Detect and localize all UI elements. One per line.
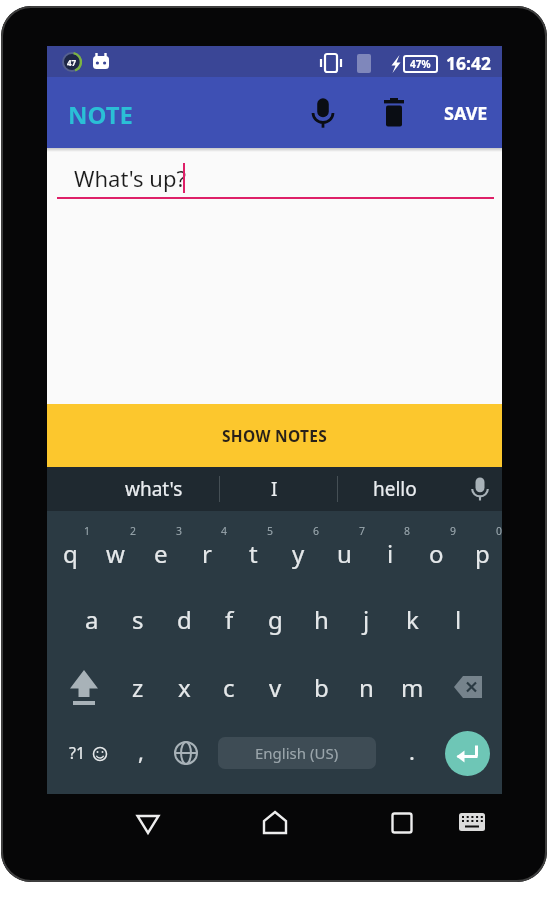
button[interactable]: y [276, 527, 320, 579]
staticText: u [337, 537, 352, 570]
button[interactable]: i [368, 527, 412, 579]
staticText: w [106, 537, 125, 570]
staticText: 5 [267, 524, 274, 538]
button[interactable]: c [207, 659, 251, 715]
button[interactable]: what's [99, 467, 209, 511]
staticText: 47 [67, 57, 77, 68]
staticText: z [132, 671, 144, 704]
button[interactable]: v [253, 659, 297, 715]
staticText: ?1 [69, 742, 86, 764]
button[interactable] [389, 810, 415, 836]
staticText: English (US) [255, 743, 339, 763]
button[interactable]: e [139, 527, 183, 579]
staticText: l [455, 603, 462, 636]
staticText: 7 [359, 524, 366, 538]
button[interactable]: j [344, 591, 388, 647]
staticText: i [387, 537, 394, 570]
staticText: y [292, 537, 305, 570]
button[interactable]: hello [345, 467, 445, 511]
button[interactable] [445, 731, 490, 776]
button[interactable]: p [460, 527, 504, 579]
staticText: 47% [410, 57, 431, 71]
button[interactable] [59, 661, 109, 713]
button[interactable] [457, 810, 487, 834]
staticText: p [475, 537, 490, 570]
staticText: 16:42 [446, 51, 491, 75]
staticText: k [406, 603, 419, 636]
staticText: q [63, 537, 78, 570]
button[interactable]: o [414, 527, 458, 579]
button[interactable] [443, 661, 493, 713]
button[interactable]: x [162, 659, 206, 715]
button[interactable]: ?1 [56, 727, 98, 779]
staticText: NOTE [68, 98, 134, 131]
button[interactable]: SHOW NOTES [47, 404, 502, 467]
button[interactable]: . [394, 725, 430, 777]
button[interactable]: l [436, 591, 480, 647]
staticText: 9 [450, 524, 457, 538]
button[interactable]: SAVE [430, 92, 502, 134]
button[interactable] [300, 89, 346, 137]
staticText: h [314, 603, 329, 636]
button[interactable]: q [48, 527, 92, 579]
button[interactable]: , [123, 725, 159, 777]
staticText: 0 [496, 524, 503, 538]
button[interactable]: f [207, 591, 251, 647]
button[interactable] [260, 809, 290, 837]
staticText: 2 [130, 524, 137, 538]
staticText: 4 [221, 524, 228, 538]
button[interactable] [57, 152, 494, 200]
button[interactable]: t [231, 527, 275, 579]
staticText: a [85, 603, 99, 636]
staticText: t [249, 537, 258, 570]
button[interactable]: h [299, 591, 343, 647]
button[interactable]: English (US) [218, 737, 376, 769]
button[interactable]: d [162, 591, 206, 647]
staticText: . [409, 736, 415, 766]
staticText: e [154, 537, 168, 570]
staticText: c [223, 671, 235, 704]
staticText: b [314, 671, 329, 704]
button[interactable] [371, 89, 417, 137]
staticText: j [363, 603, 370, 636]
button[interactable] [166, 733, 206, 773]
staticText: v [269, 671, 282, 704]
button[interactable] [133, 811, 163, 837]
staticText: what's [125, 476, 183, 502]
button[interactable] [465, 474, 495, 504]
staticText: o [429, 537, 444, 570]
staticText: SHOW NOTES [222, 425, 328, 446]
staticText: m [401, 671, 424, 704]
staticText: x [178, 671, 191, 704]
button[interactable]: k [390, 591, 434, 647]
button[interactable]: g [253, 591, 297, 647]
button[interactable]: a [70, 591, 114, 647]
button[interactable]: r [185, 527, 229, 579]
staticText: n [359, 671, 374, 704]
staticText: 1 [84, 524, 91, 538]
staticText: , [138, 736, 144, 766]
button[interactable]: n [344, 659, 388, 715]
staticText: 3 [176, 524, 183, 538]
button[interactable]: s [116, 591, 160, 647]
staticText: s [132, 603, 144, 636]
staticText: hello [373, 476, 417, 502]
button[interactable]: w [93, 527, 137, 579]
button[interactable]: m [390, 659, 434, 715]
button[interactable]: z [116, 659, 160, 715]
staticText: d [177, 603, 192, 636]
staticText: What's up? [74, 163, 187, 193]
button[interactable]: I [224, 467, 324, 511]
button[interactable]: b [299, 659, 343, 715]
staticText: 8 [404, 524, 411, 538]
staticText: g [268, 603, 283, 636]
button[interactable]: u [322, 527, 366, 579]
staticText: I [271, 476, 278, 502]
staticText: SAVE [444, 101, 488, 126]
staticText: 6 [313, 524, 320, 538]
staticText: f [225, 603, 234, 636]
staticText: r [202, 537, 212, 570]
